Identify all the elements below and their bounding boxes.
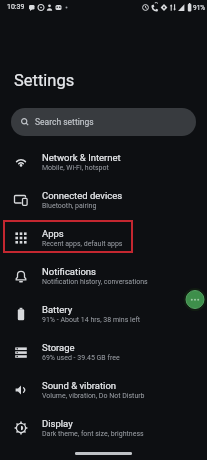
staticText: 10:39 [7,3,25,11]
staticText: Volume, vibration, Do Not Disturb [42,392,145,400]
staticText: Network & Internet [42,152,121,163]
staticText: Apps [42,228,64,239]
staticText: Dark theme, font size, brightness [42,430,144,438]
button[interactable]: Connected devices [0,181,207,219]
button[interactable]: Search settings [11,108,196,136]
staticText: 69% used - 39.45 GB free [42,354,120,362]
button[interactable] [183,288,207,312]
button[interactable]: Display [0,409,207,447]
button[interactable]: Apps [0,219,207,257]
button[interactable]: Battery [0,295,207,333]
staticText: 91% [193,4,206,12]
button[interactable]: Notifications [0,257,207,295]
staticText: Display [42,418,73,429]
staticText: Storage [42,342,75,353]
button[interactable]: Sound & vibration [0,371,207,409]
staticText: Notification history, conversations [42,278,148,286]
staticText: Search settings [35,117,94,127]
staticText: Battery [42,304,73,315]
staticText: Recent apps, default apps [42,240,123,248]
button[interactable]: Storage [0,333,207,371]
staticText: Settings [14,71,75,90]
staticText: Sound & vibration [42,380,117,391]
staticText: Connected devices [42,190,123,201]
staticText: Bluetooth, pairing [42,202,97,210]
button[interactable]: Network & Internet [0,143,207,181]
staticText: 91% - About 14 hrs, 38 mins left [42,316,141,324]
staticText: Mobile, Wi-Fi, hotspot [42,164,109,172]
staticText: Notifications [42,266,97,277]
